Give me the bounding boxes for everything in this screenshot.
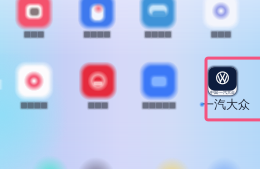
button[interactable]: App seven bbox=[119, 41, 199, 121]
button[interactable]: App five bbox=[0, 41, 74, 121]
button[interactable]: App two bbox=[57, 0, 137, 51]
button[interactable]: App four bbox=[181, 0, 260, 51]
button[interactable]: App one bbox=[0, 0, 74, 51]
button[interactable]: App three bbox=[118, 0, 198, 51]
staticText: 中国·一汽大众 bbox=[210, 90, 235, 95]
staticText: 一汽大众 bbox=[202, 97, 250, 112]
button[interactable]: App six bbox=[58, 41, 138, 121]
button[interactable]: 中国·一汽大众 bbox=[182, 41, 260, 121]
